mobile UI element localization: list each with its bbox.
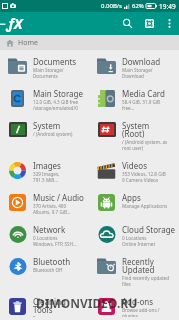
button[interactable]: Network — [0, 218, 89, 250]
staticText: Cleaning Tools — [33, 296, 66, 315]
staticText: Cloud Storage — [122, 224, 176, 235]
staticText: Find recently updated files — [122, 275, 169, 287]
staticText: / (Android system, as root user) — [122, 139, 168, 151]
staticText: Documents — [33, 56, 77, 67]
button[interactable]: Cloud Storage — [89, 218, 179, 250]
staticText: Add-ons — [122, 296, 154, 307]
staticText: System (Root) — [122, 120, 150, 139]
staticText: Free up space — [33, 315, 63, 317]
staticText: Bluetooth — [33, 256, 71, 267]
button[interactable]: Main Storage — [0, 82, 89, 114]
button[interactable]: Media Card — [89, 82, 179, 114]
staticText: Images — [33, 160, 61, 171]
staticText: 329 Images, 791.5 MiB... — [33, 171, 60, 183]
staticText: Home — [18, 38, 38, 48]
button[interactable]: FX — [0, 12, 30, 35]
staticText: Network — [33, 224, 66, 235]
staticText: 370 Artists, 400 Albums, 9.7 GiB... — [33, 203, 71, 215]
button[interactable]: Images — [0, 154, 89, 186]
staticText: DIMONVIDEO.RU — [36, 295, 138, 311]
staticText: 58.4 GiB, 31.9 GiB free... — [122, 99, 161, 111]
button[interactable]: Documents — [0, 50, 89, 82]
button[interactable]: Home — [0, 35, 179, 50]
button[interactable]: Apps — [89, 186, 179, 214]
staticText: Manage Applications — [122, 203, 168, 209]
button[interactable]: System (Root) — [89, 114, 179, 154]
staticText: / (Android system) — [33, 131, 73, 137]
staticText: Apps — [122, 192, 141, 203]
staticText: Music / Audio — [33, 192, 84, 203]
button[interactable]: Cleaning Tools — [0, 290, 89, 320]
button[interactable]: Add-ons — [89, 290, 179, 320]
staticText: 0.00B/s — [101, 2, 122, 10]
staticText: 19:49 — [159, 2, 176, 11]
staticText: Recently Updated — [122, 256, 155, 275]
staticText: 0 Locations Windows, FTP, SSH... — [33, 235, 77, 247]
staticText: Videos — [122, 160, 147, 171]
button[interactable]: Download — [89, 50, 179, 82]
staticText: Main Storage/ Documents — [33, 67, 64, 79]
button[interactable]: Select — [138, 12, 160, 35]
button[interactable]: Videos — [89, 154, 179, 186]
button[interactable]: System — [0, 114, 89, 142]
staticText: Bluetooth Off — [33, 267, 63, 273]
staticText: ƒX — [7, 14, 23, 33]
staticText: Browse add-ons / plugins — [122, 307, 160, 317]
staticText: 12.0 GiB, 4.3 GiB free /storage/emulated… — [33, 99, 79, 111]
staticText: System — [33, 120, 61, 131]
staticText: Main Storage/ Download — [122, 67, 153, 79]
staticText: Download — [122, 56, 161, 67]
staticText: 62% — [132, 2, 144, 10]
staticText: Media Card — [122, 88, 165, 99]
button[interactable]: Search — [116, 12, 138, 35]
button[interactable]: More options — [160, 12, 178, 35]
staticText: 0 Locations Online Internet — [122, 235, 156, 247]
staticText: 353 Videos, 12.8 GiB 9 Camera Videos — [122, 171, 166, 183]
button[interactable]: Bluetooth — [0, 250, 89, 278]
button[interactable]: Music / Audio — [0, 186, 89, 218]
staticText: Main Storage — [33, 88, 84, 99]
button[interactable]: Recently Updated — [89, 250, 179, 290]
